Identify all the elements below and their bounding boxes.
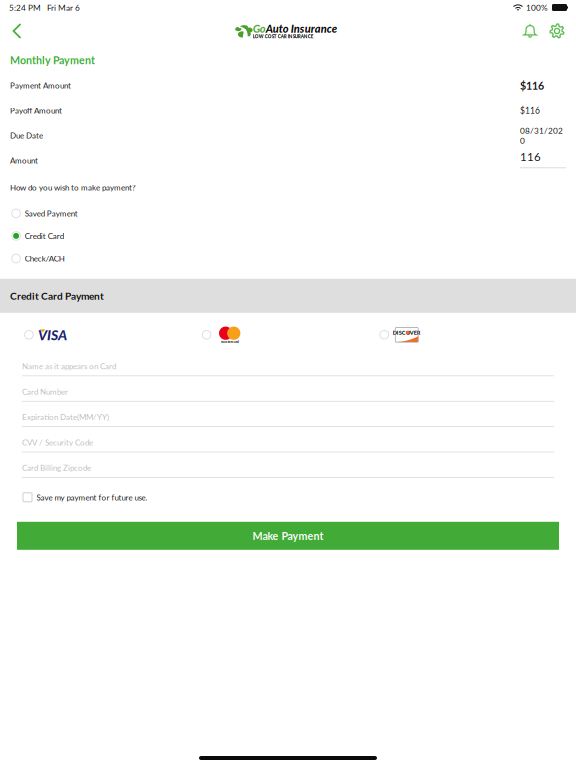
staticText: $116 [520, 79, 544, 92]
staticText: VISA [38, 326, 67, 343]
button[interactable]: Save my payment for future use. [0, 484, 576, 511]
button[interactable]: Discover [380, 321, 558, 349]
button[interactable]: Make Payment [0, 511, 576, 550]
staticText: Name as it appears on Card [22, 361, 116, 371]
button[interactable]: Settings [544, 15, 570, 47]
staticText: Credit Card Payment [10, 290, 104, 302]
staticText: How do you wish to make payment? [10, 183, 136, 192]
staticText: Card Billing Zipcode [22, 463, 91, 472]
staticText: Monthly Payment [10, 54, 95, 66]
button[interactable]: Visa [25, 321, 202, 349]
staticText: Auto Insurance [266, 22, 337, 35]
button[interactable]: Credit Card [10, 225, 566, 247]
staticText: Save my payment for future use. [36, 492, 147, 502]
staticText: Saved Payment [25, 208, 78, 218]
staticText: Amount [10, 156, 38, 165]
button[interactable]: Notifications [516, 15, 544, 47]
staticText: Credit Card [25, 231, 64, 241]
staticText: DISCOVER [393, 329, 421, 336]
staticText: Make Payment [252, 529, 323, 542]
button[interactable]: Check/ACH [10, 247, 566, 270]
button[interactable]: Mastercard [202, 321, 380, 349]
staticText: CVV / Security Code [22, 437, 93, 447]
staticText: Due Date [10, 131, 43, 140]
staticText: Go [253, 22, 266, 35]
staticText: LOW COST CAR INSURANCE [253, 34, 314, 39]
staticText: mastercard [221, 339, 239, 344]
staticText: 5:24 PM [9, 2, 41, 12]
staticText: Card Number [22, 387, 68, 396]
staticText: Check/ACH [25, 254, 65, 263]
button[interactable]: Saved Payment [10, 202, 566, 225]
staticText: 100% [526, 2, 548, 12]
staticText: Fri Mar 6 [47, 2, 80, 12]
staticText: Payment Amount [10, 81, 71, 90]
staticText: Payoff Amount [10, 106, 62, 115]
staticText: Expiration Date(MM/YY) [22, 412, 109, 422]
staticText: $116 [520, 105, 540, 116]
staticText: 08/31/2020 [520, 126, 563, 145]
button[interactable]: Back [2, 15, 32, 47]
staticText: 116 [520, 150, 541, 163]
